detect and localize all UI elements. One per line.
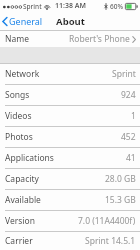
staticText: 41	[126, 152, 136, 164]
staticText: Name	[5, 33, 29, 45]
button[interactable]: General	[0, 12, 47, 30]
staticText: 924	[121, 89, 136, 101]
button[interactable]: Version	[0, 211, 140, 231]
staticText: Capacity	[5, 173, 39, 185]
staticText: 7.0 (11A4400f)	[78, 215, 136, 227]
staticText: 28.0 GB	[105, 173, 136, 185]
staticText: Robert's Phone	[69, 33, 130, 45]
staticText: Songs	[5, 89, 30, 101]
staticText: Photos	[5, 131, 33, 143]
staticText: 60%	[110, 2, 123, 11]
staticText: General	[9, 15, 43, 27]
button[interactable]: Available	[0, 190, 140, 210]
button[interactable]: Name	[0, 31, 140, 47]
staticText: 15.3 GB	[105, 194, 136, 206]
staticText: 1	[131, 110, 136, 122]
staticText: Available	[5, 194, 41, 206]
staticText: About	[56, 15, 85, 28]
button[interactable]: Capacity	[0, 169, 140, 189]
staticText: Sprint	[23, 2, 42, 11]
staticText: Carrier	[5, 235, 33, 247]
button[interactable]: Songs	[0, 85, 140, 105]
button[interactable]: Applications	[0, 148, 140, 168]
staticText: Sprint	[112, 68, 136, 80]
staticText: Sprint 14.5.1	[85, 235, 136, 247]
button[interactable]: Videos	[0, 106, 140, 126]
staticText: Version	[5, 215, 35, 227]
staticText: Applications	[5, 152, 54, 164]
button[interactable]: Photos	[0, 127, 140, 147]
button[interactable]: Carrier	[0, 232, 140, 250]
staticText: 452	[121, 131, 136, 143]
staticText: Network	[5, 68, 40, 80]
button[interactable]: Network	[0, 64, 140, 84]
staticText: Videos	[5, 110, 32, 122]
staticText: 11:38 AM	[55, 1, 86, 11]
